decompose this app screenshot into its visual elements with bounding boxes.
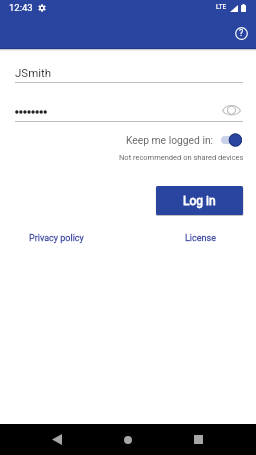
staticText: ? xyxy=(239,28,244,39)
button[interactable]: Home xyxy=(113,425,142,454)
button[interactable]: Keep me logged in: xyxy=(126,133,242,147)
staticText: License xyxy=(185,233,216,244)
staticText: JSmith xyxy=(15,66,52,79)
button[interactable]: Back xyxy=(42,425,71,454)
staticText: 12:43 xyxy=(9,2,33,13)
button[interactable]: License xyxy=(185,233,216,244)
staticText: Not recommended on shared devices xyxy=(119,153,244,162)
staticText: Keep me logged in: xyxy=(126,134,214,146)
button[interactable]: Show password xyxy=(220,99,242,121)
staticText: Privacy policy xyxy=(29,233,84,244)
staticText: Log in xyxy=(183,194,216,208)
button[interactable]: Recent apps xyxy=(184,425,213,454)
button[interactable]: Log in xyxy=(156,186,243,215)
staticText: LTE xyxy=(216,3,227,11)
button[interactable]: Help xyxy=(229,21,253,45)
button[interactable]: Privacy policy xyxy=(29,233,84,244)
